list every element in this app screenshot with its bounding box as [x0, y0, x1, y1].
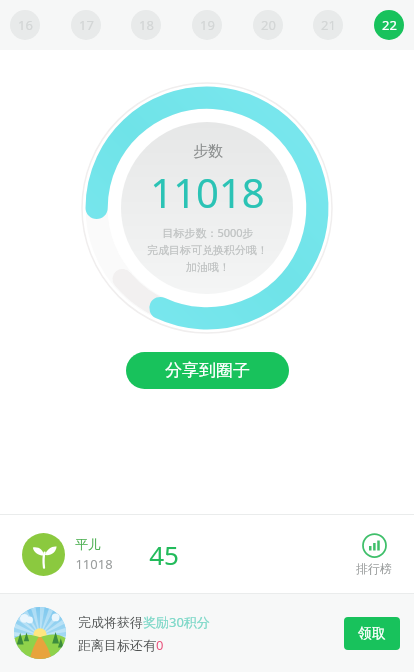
button[interactable]: 19	[192, 10, 222, 40]
staticText: 完成目标可兑换积分哦！	[147, 243, 268, 257]
staticText: 17	[79, 16, 94, 34]
staticText: 45	[149, 537, 179, 572]
staticText: 目标步数：5000步	[162, 225, 254, 240]
button[interactable]: 16	[10, 10, 40, 40]
staticText: 21	[321, 16, 336, 34]
staticText: 领取	[358, 625, 386, 643]
button[interactable]: 20	[253, 10, 283, 40]
button[interactable]: 18	[131, 10, 161, 40]
staticText: 步数	[193, 142, 223, 161]
button[interactable]: 分享到圈子	[126, 352, 289, 389]
staticText: 11018	[150, 165, 265, 219]
button[interactable]: 排行榜	[356, 533, 392, 576]
button[interactable]: 领取	[344, 617, 400, 650]
staticText: 19	[200, 16, 215, 34]
button[interactable]: 21	[313, 10, 343, 40]
staticText: 排行榜	[356, 561, 392, 576]
button[interactable]: 平儿	[22, 533, 113, 576]
staticText: 16	[18, 16, 33, 34]
other: 排行榜	[362, 533, 387, 558]
staticText: 完成将获得奖励30积分	[78, 613, 210, 631]
staticText: 18	[139, 16, 154, 34]
staticText: 加油哦！	[186, 260, 230, 274]
staticText: 距离目标还有0	[78, 636, 164, 654]
button[interactable]: 17	[71, 10, 101, 40]
staticText: 分享到圈子	[165, 360, 250, 381]
staticText: 平儿	[75, 536, 101, 552]
staticText: 20	[261, 16, 276, 34]
button[interactable]: 22	[374, 10, 404, 40]
staticText: 11018	[75, 555, 113, 573]
staticText: 22	[382, 16, 397, 34]
